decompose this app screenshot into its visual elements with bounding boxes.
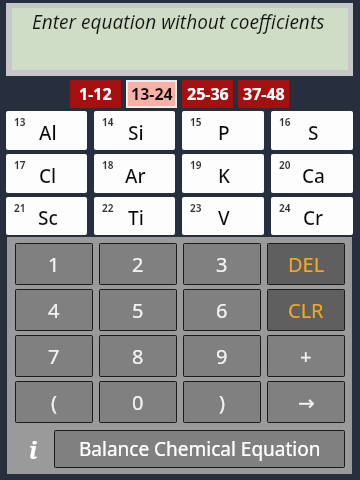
staticText: Enter equation without coefficients bbox=[32, 9, 325, 35]
button[interactable]: 0 bbox=[100, 382, 176, 422]
staticText: 13 bbox=[14, 115, 26, 129]
button[interactable]: 16 bbox=[271, 111, 353, 150]
staticText: 9 bbox=[216, 343, 228, 370]
button[interactable]: 15 bbox=[182, 111, 264, 150]
staticText: Ca bbox=[302, 163, 325, 189]
button[interactable]: 13 bbox=[6, 111, 87, 150]
staticText: Al bbox=[39, 120, 57, 146]
staticText: → bbox=[298, 391, 315, 414]
button[interactable]: 2 bbox=[100, 244, 176, 284]
staticText: Sc bbox=[38, 205, 58, 231]
staticText: 37-48 bbox=[243, 83, 285, 105]
button[interactable]: Balance Chemical Equation bbox=[55, 431, 344, 467]
staticText: 15 bbox=[190, 115, 202, 129]
button[interactable]: 14 bbox=[94, 111, 175, 150]
button[interactable]: 19 bbox=[182, 154, 264, 193]
staticText: Balance Chemical Equation bbox=[79, 436, 321, 462]
button[interactable]: Info bbox=[7, 423, 54, 474]
button[interactable]: 24 bbox=[271, 197, 353, 235]
staticText: 22 bbox=[102, 201, 114, 215]
staticText: V bbox=[218, 205, 230, 231]
button[interactable]: 23 bbox=[182, 197, 264, 235]
button[interactable]: 6 bbox=[184, 290, 260, 330]
staticText: 16 bbox=[279, 115, 291, 129]
staticText: 7 bbox=[48, 343, 60, 370]
staticText: Ar bbox=[125, 163, 146, 189]
staticText: 21 bbox=[14, 201, 26, 215]
staticText: 1 bbox=[48, 251, 60, 278]
staticText: 23 bbox=[190, 201, 202, 215]
staticText: 24 bbox=[279, 201, 291, 215]
button[interactable]: 8 bbox=[100, 336, 176, 376]
staticText: 17 bbox=[14, 158, 26, 172]
button[interactable]: 17 bbox=[6, 154, 87, 193]
staticText: i bbox=[29, 434, 38, 465]
button[interactable]: Enter equation without coefficients bbox=[12, 8, 348, 70]
staticText: 5 bbox=[132, 297, 144, 324]
button[interactable]: 18 bbox=[94, 154, 175, 193]
button[interactable]: → bbox=[268, 382, 344, 422]
staticText: P bbox=[218, 120, 230, 146]
button[interactable]: 22 bbox=[94, 197, 175, 235]
staticText: Si bbox=[128, 120, 144, 146]
button[interactable]: 5 bbox=[100, 290, 176, 330]
button[interactable]: 7 bbox=[16, 336, 92, 376]
staticText: 19 bbox=[190, 158, 202, 172]
button[interactable]: 21 bbox=[6, 197, 87, 235]
button[interactable]: 9 bbox=[184, 336, 260, 376]
button[interactable]: ( bbox=[16, 382, 92, 422]
staticText: DEL bbox=[288, 251, 325, 278]
staticText: CLR bbox=[288, 297, 324, 324]
button[interactable]: 13-24 bbox=[128, 82, 175, 106]
staticText: 3 bbox=[216, 251, 228, 278]
staticText: Ti bbox=[128, 205, 144, 231]
button[interactable]: ) bbox=[184, 382, 260, 422]
staticText: 18 bbox=[102, 158, 114, 172]
button[interactable]: DEL bbox=[268, 244, 344, 284]
staticText: Cr bbox=[303, 205, 324, 231]
staticText: 13-24 bbox=[131, 83, 173, 105]
staticText: 0 bbox=[132, 389, 144, 416]
button[interactable]: CLR bbox=[268, 290, 344, 330]
button[interactable]: 4 bbox=[16, 290, 92, 330]
staticText: 8 bbox=[132, 343, 144, 370]
staticText: + bbox=[300, 343, 312, 370]
button[interactable]: 25-36 bbox=[182, 80, 233, 108]
button[interactable]: 20 bbox=[271, 154, 353, 193]
staticText: 25-36 bbox=[187, 83, 229, 105]
staticText: 20 bbox=[279, 158, 291, 172]
staticText: S bbox=[308, 120, 319, 146]
staticText: ) bbox=[219, 389, 225, 416]
staticText: 2 bbox=[132, 251, 144, 278]
button[interactable]: 1 bbox=[16, 244, 92, 284]
staticText: Cl bbox=[39, 163, 57, 189]
button[interactable]: 1-12 bbox=[70, 80, 121, 108]
button[interactable]: + bbox=[268, 336, 344, 376]
button[interactable]: 37-48 bbox=[238, 80, 289, 108]
staticText: ( bbox=[51, 389, 57, 416]
staticText: 14 bbox=[102, 115, 114, 129]
button[interactable]: 3 bbox=[184, 244, 260, 284]
staticText: 6 bbox=[216, 297, 228, 324]
staticText: 4 bbox=[48, 297, 60, 324]
staticText: 1-12 bbox=[79, 83, 112, 105]
staticText: K bbox=[218, 163, 231, 189]
